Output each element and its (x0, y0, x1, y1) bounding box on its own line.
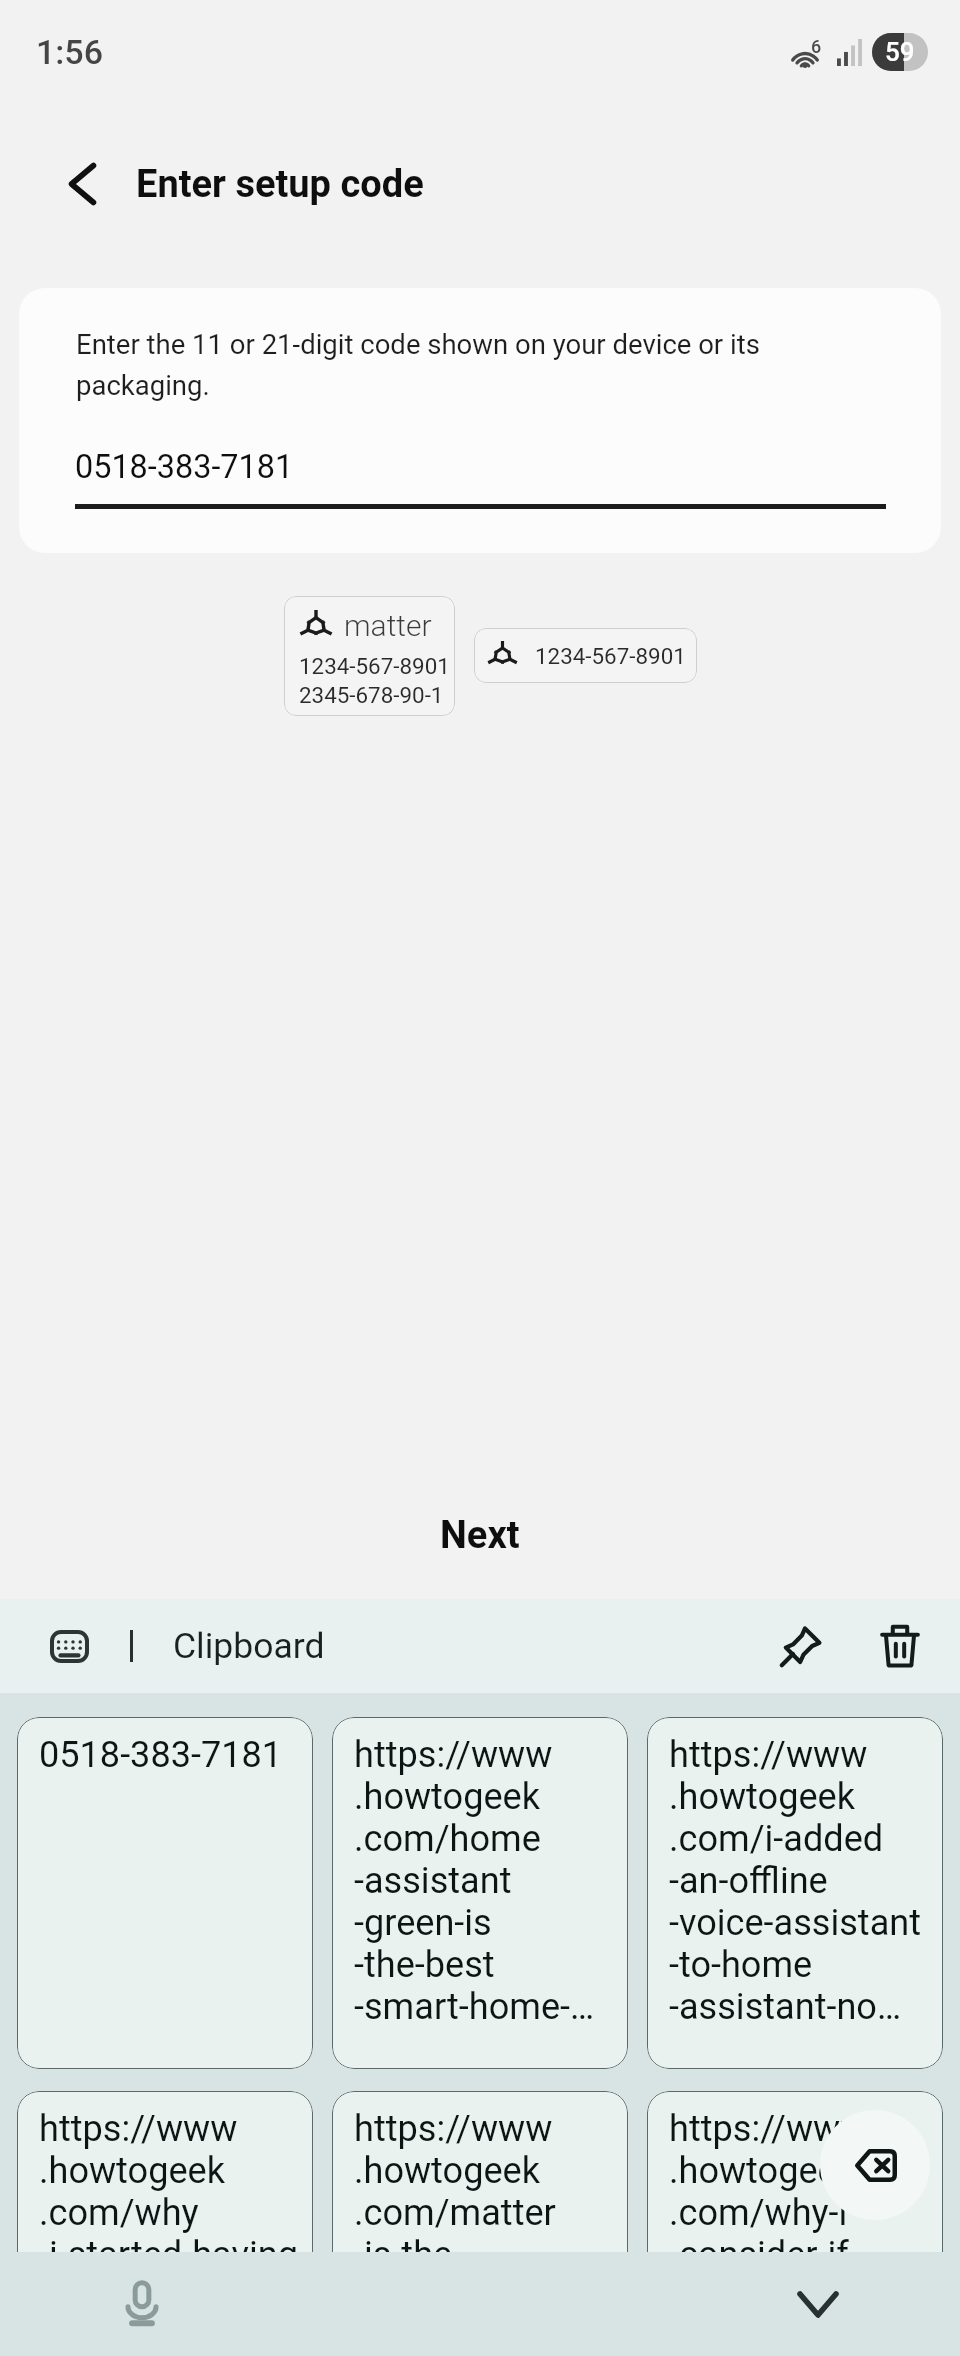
staticText: 1:56 (36, 32, 103, 72)
staticText: https://www .howtogeek .com/i-added -an-… (669, 1734, 922, 2028)
button[interactable]: matter (284, 596, 455, 716)
button[interactable]: https://www .howtogeek .com/home -assist… (332, 1717, 628, 2069)
button[interactable]: https://www .howtogeek .com/i-added -an-… (647, 1717, 943, 2069)
button[interactable]: https://www .howtogeek .com/why-i -consi… (647, 2091, 943, 2356)
staticText: https://www .howtogeek .com/why -i-start… (39, 2108, 298, 2318)
staticText: Enter the 11 or 21-digit code shown on y… (76, 328, 760, 402)
button[interactable]: Hide keyboard (780, 2266, 856, 2342)
staticText: matter (344, 608, 432, 643)
button[interactable]: Backspace (820, 2110, 930, 2220)
staticText: Next (440, 1513, 520, 1558)
staticText: 0518-383-7181 (75, 448, 294, 486)
button[interactable]: Delete all (866, 1612, 934, 1680)
staticText: https://www .howtogeek .com/why-i -consi… (669, 2108, 868, 2318)
staticText: 6 (811, 36, 822, 57)
button[interactable]: Pin (767, 1612, 835, 1680)
staticText: 1234-567-8901 2345-678-90-1 (299, 653, 450, 709)
staticText: https://www .howtogeek .com/home -assist… (354, 1734, 595, 2028)
button[interactable]: Keyboard (40, 1617, 98, 1675)
staticText: Enter setup code (136, 162, 424, 207)
button[interactable]: Clipboard (173, 1625, 325, 1667)
staticText: 59 (885, 37, 915, 67)
button[interactable]: Next (0, 1495, 960, 1575)
staticText: 1234-567-8901 (535, 643, 686, 669)
staticText: https://www .howtogeek .com/matter -is-t… (354, 2108, 556, 2318)
button[interactable]: https://www .howtogeek .com/why -i-start… (17, 2091, 313, 2356)
button[interactable]: Back (46, 148, 118, 220)
button[interactable]: Voice input (104, 2266, 180, 2342)
staticText: 0518-383-7181 (39, 1734, 283, 1776)
button[interactable]: 1234-567-8901 (474, 628, 697, 683)
button[interactable]: https://www .howtogeek .com/matter -is-t… (332, 2091, 628, 2356)
button[interactable]: 0518-383-7181 (17, 1717, 313, 2069)
